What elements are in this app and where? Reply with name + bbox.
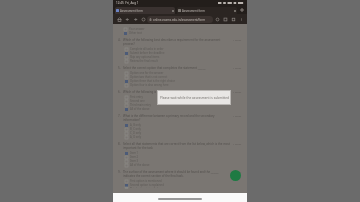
button[interactable]: Tabs (221, 15, 229, 24)
button[interactable]: Please wait while the assessment is subm… (158, 91, 230, 104)
staticText: 7. (118, 114, 121, 118)
staticText: Which of the following is used in this c… (123, 90, 185, 94)
staticText: First option is mentioned (130, 179, 162, 183)
button[interactable]: online-exams.edu.in/assessment/form (147, 16, 213, 23)
staticText: 9. (118, 170, 121, 174)
staticText: First entry (130, 95, 143, 99)
button[interactable]: Your answer (124, 27, 242, 31)
button[interactable]: Downloads (229, 15, 237, 24)
staticText: The surface of the assessment where it s… (123, 170, 231, 178)
button[interactable]: Home (115, 15, 123, 24)
staticText: B, C only (130, 127, 141, 131)
staticText: Second option is explained (130, 183, 164, 187)
staticText: 12:45 Fri, Aug 1 (116, 1, 139, 5)
staticText: Option one for the answer (130, 71, 164, 75)
staticText: Review the final result (130, 59, 158, 63)
button[interactable]: Option three that is the right choice (125, 79, 242, 83)
staticText: C, D only (130, 131, 142, 135)
button[interactable]: First option is mentioned (125, 179, 242, 183)
staticText: A, D only (130, 135, 142, 139)
button[interactable]: Forward (131, 15, 139, 24)
button[interactable]: Back (123, 15, 131, 24)
button[interactable]: Third main entry (125, 103, 242, 107)
staticText: Third main entry (130, 103, 151, 107)
staticText: What is the difference between a primary… (123, 114, 231, 122)
staticText: Complete all tasks in order (130, 47, 164, 51)
button[interactable]: Other text (124, 31, 242, 35)
staticText: Second one (130, 99, 145, 103)
button[interactable]: Assessment form (115, 7, 175, 14)
staticText: All of the above (130, 107, 150, 111)
button[interactable]: Third option is implied (125, 187, 242, 188)
staticText: 4. (118, 38, 121, 42)
staticText: Option three that is the right choice (130, 79, 176, 83)
staticText: All of the above (130, 163, 150, 167)
button[interactable]: A, B only (125, 123, 242, 127)
staticText: 1 point (233, 90, 242, 93)
button[interactable]: More options (237, 15, 245, 24)
button[interactable]: Skip any optional items (125, 55, 242, 59)
button[interactable]: Option two that is not correct (125, 75, 242, 79)
button[interactable]: Complete all tasks in order (125, 47, 242, 51)
button[interactable]: Close tab (171, 9, 174, 12)
staticText: Please wait while the assessment is subm… (160, 96, 229, 100)
staticText: 8. (118, 142, 121, 146)
button[interactable]: Option four is also wrong here (125, 83, 242, 87)
button[interactable]: Assessment form (177, 7, 237, 14)
button[interactable]: Item 1 (125, 151, 242, 155)
staticText: Your answer (129, 27, 145, 31)
staticText: 1 point (233, 142, 242, 145)
staticText: 1 point (233, 66, 242, 69)
staticText: Third option is implied (130, 187, 159, 188)
button[interactable]: Reload (139, 15, 147, 24)
staticText: Item 1 (130, 151, 139, 155)
button[interactable]: Option one for the answer (125, 71, 242, 75)
button[interactable]: Bookmark (213, 15, 221, 24)
button[interactable]: Compose (230, 170, 241, 181)
button[interactable]: All of the above (125, 107, 242, 111)
button[interactable]: Second option is explained (125, 183, 242, 187)
staticText: Assessment form (182, 9, 205, 13)
staticText: Other text (129, 31, 142, 35)
staticText: 1 point (233, 38, 242, 41)
staticText: Option two that is not correct (130, 75, 168, 79)
staticText: Item 3 (130, 159, 139, 163)
staticText: Which of the following best describes a … (123, 38, 231, 46)
button[interactable]: All of the above (125, 163, 242, 167)
staticText: Select all that statements that are corr… (123, 142, 231, 150)
staticText: 6. (118, 90, 121, 94)
staticText: Item 2 (130, 155, 139, 159)
staticText: Assessment form (120, 9, 143, 13)
staticText: online-exams.edu.in/assessment/form (153, 18, 206, 22)
button[interactable]: New tab (239, 7, 245, 13)
staticText: 1 point (233, 114, 242, 117)
staticText: Submit before the deadline (130, 51, 165, 55)
button[interactable]: First entry (125, 95, 242, 99)
staticText: Select the correct option that completes… (123, 66, 206, 70)
button[interactable]: Close tab (233, 9, 236, 12)
staticText: Skip any optional items (130, 55, 160, 59)
staticText: 1 point (233, 170, 242, 173)
staticText: A, B only (130, 123, 141, 127)
button[interactable]: Review the final result (125, 59, 242, 63)
button[interactable]: Submit before the deadline (125, 51, 242, 55)
button[interactable]: Second one (125, 99, 242, 103)
staticText: Option four is also wrong here (130, 83, 169, 87)
staticText: 5. (118, 66, 121, 70)
